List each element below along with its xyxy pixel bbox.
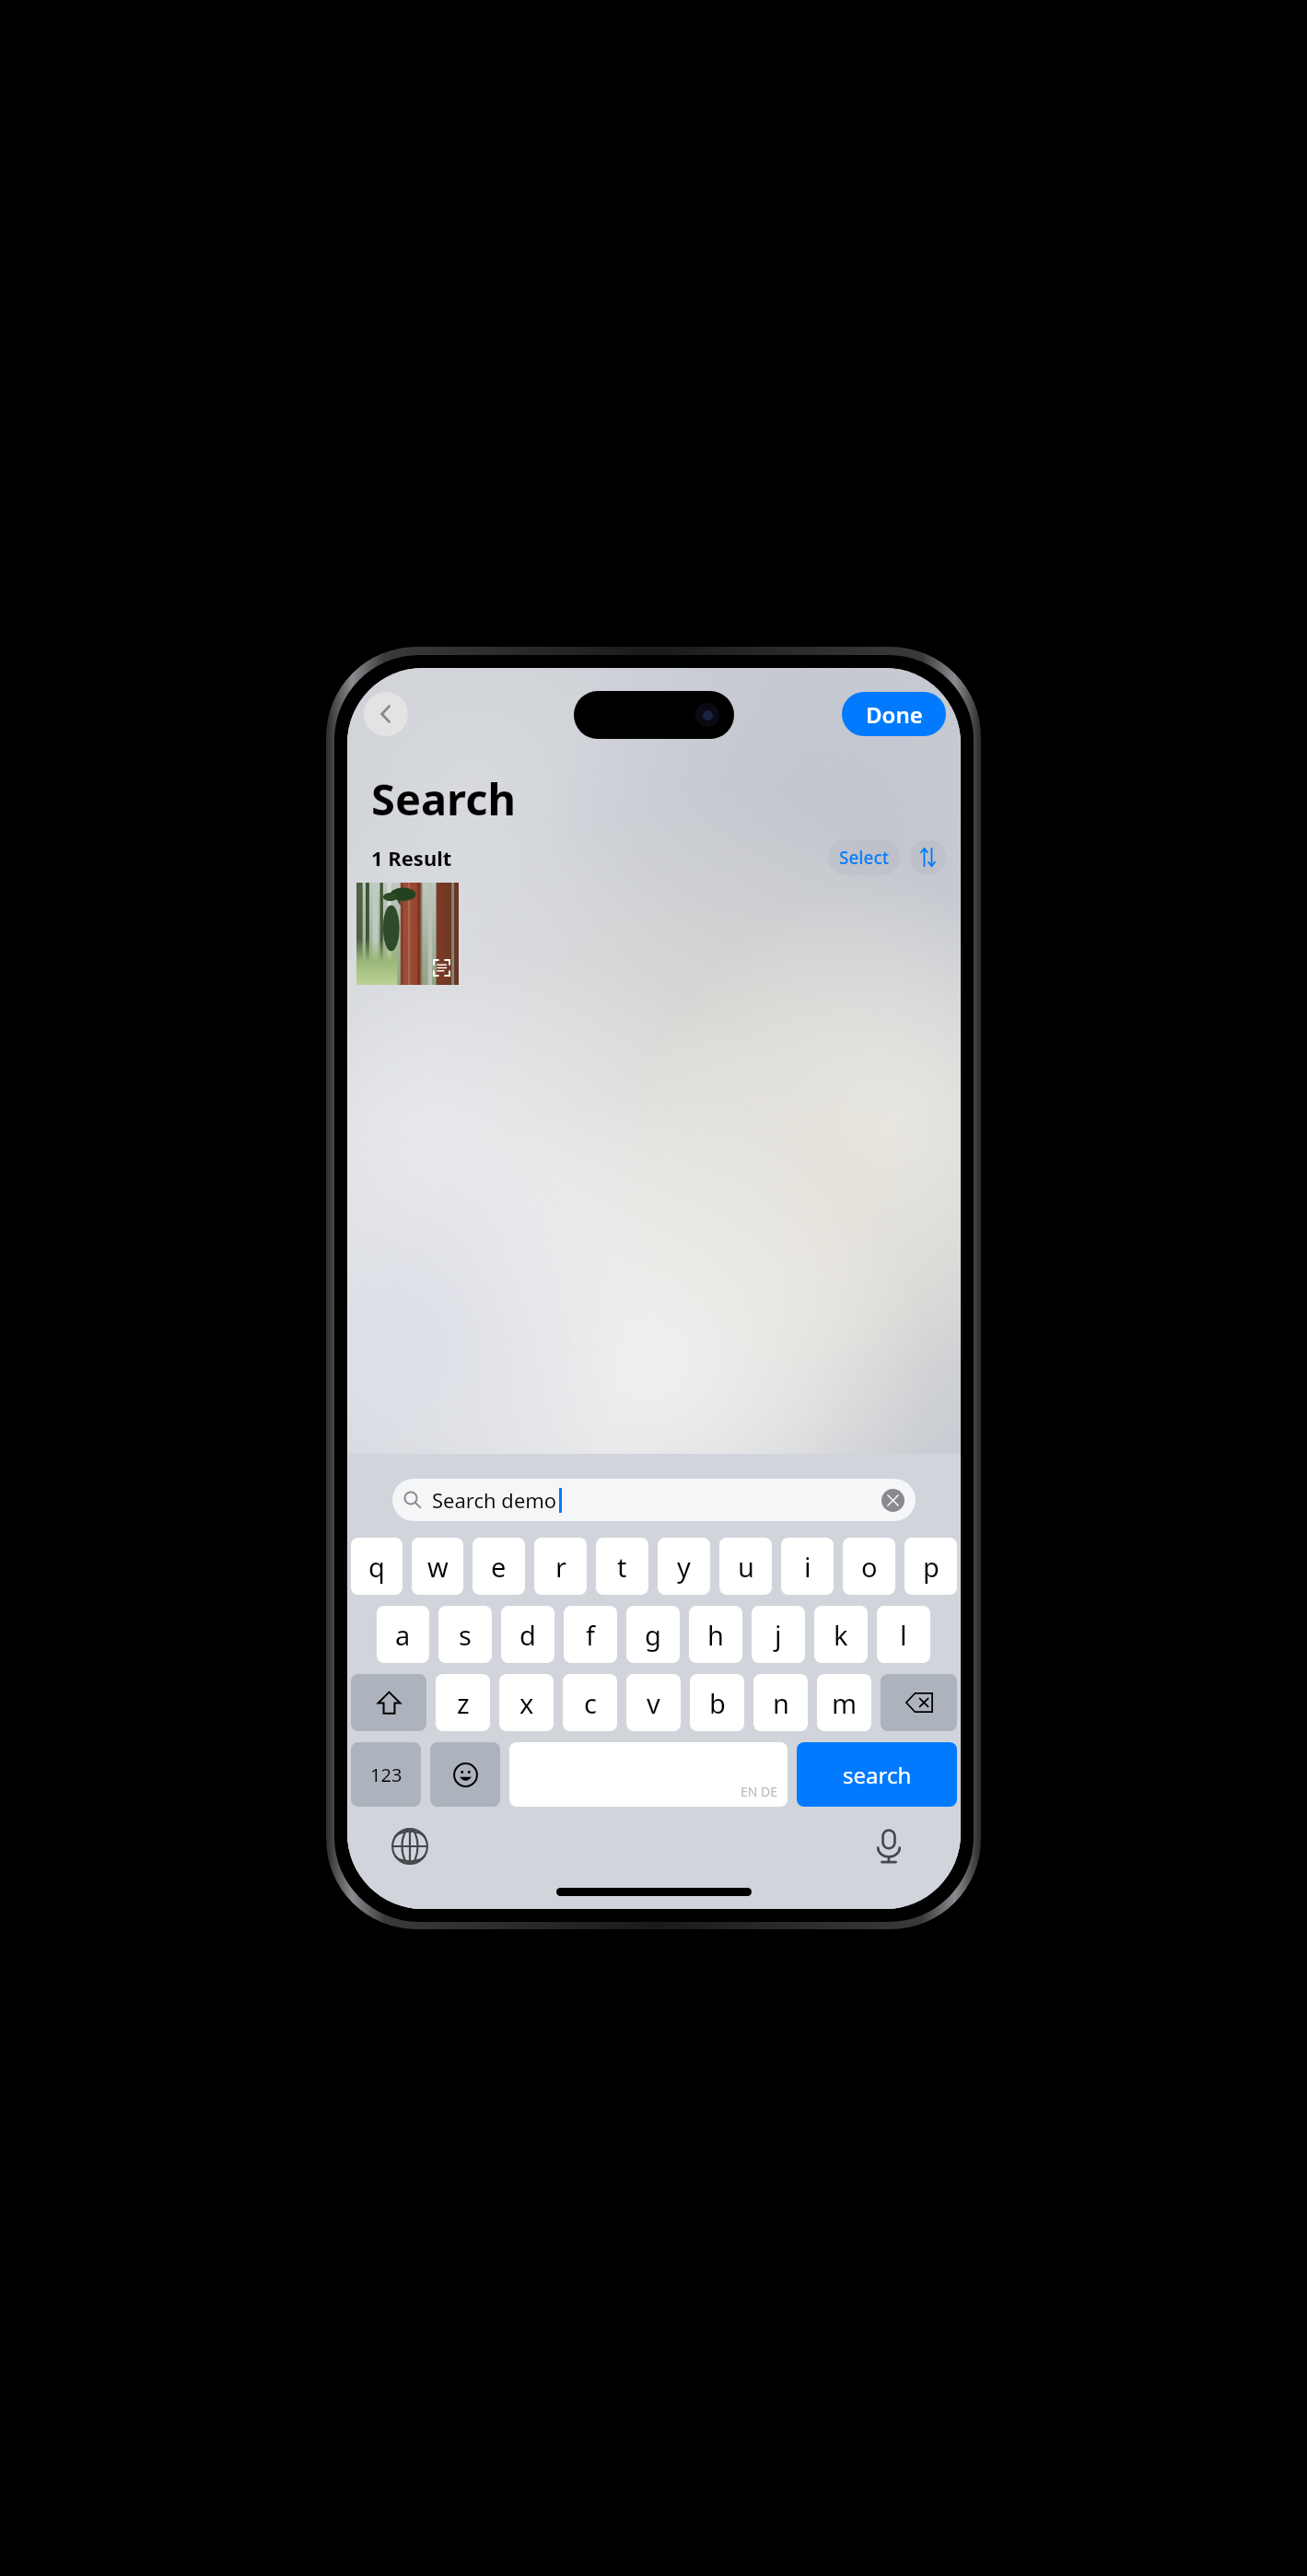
staticText: Select <box>839 846 889 870</box>
button[interactable]: q <box>351 1538 403 1595</box>
button[interactable]: Photo, redwood forest <box>356 883 459 985</box>
staticText: w <box>427 1549 449 1585</box>
button[interactable]: d <box>501 1606 554 1663</box>
button[interactable]: Back <box>364 692 408 736</box>
button[interactable]: y <box>658 1538 710 1595</box>
button[interactable]: Space <box>509 1742 788 1807</box>
staticText: d <box>519 1617 536 1653</box>
button[interactable]: f <box>564 1606 617 1663</box>
button[interactable]: b <box>690 1674 744 1731</box>
staticText: EN DE <box>741 1783 778 1800</box>
button[interactable]: x <box>499 1674 554 1731</box>
staticText: a <box>395 1617 411 1653</box>
staticText: q <box>368 1549 385 1585</box>
staticText: u <box>738 1549 754 1585</box>
staticText: z <box>457 1685 470 1721</box>
staticText: Search <box>371 769 516 828</box>
button[interactable]: c <box>563 1674 617 1731</box>
button[interactable]: o <box>843 1538 895 1595</box>
button[interactable]: g <box>626 1606 680 1663</box>
button[interactable]: s <box>438 1606 492 1663</box>
staticText: j <box>775 1617 782 1653</box>
staticText: x <box>519 1685 534 1721</box>
staticText: s <box>459 1617 472 1653</box>
staticText: 123 <box>370 1762 403 1787</box>
button[interactable]: e <box>473 1538 525 1595</box>
staticText: i <box>804 1549 811 1585</box>
button[interactable]: 123 <box>351 1742 421 1807</box>
staticText: k <box>834 1617 848 1653</box>
button[interactable]: k <box>814 1606 868 1663</box>
button[interactable]: Emoji <box>430 1742 500 1807</box>
staticText: t <box>617 1549 627 1585</box>
staticText: y <box>677 1549 691 1585</box>
button[interactable]: v <box>626 1674 681 1731</box>
button[interactable]: n <box>753 1674 808 1731</box>
staticText: p <box>923 1549 939 1585</box>
button[interactable]: p <box>904 1538 957 1595</box>
button[interactable]: Clear text <box>881 1489 904 1512</box>
button[interactable]: j <box>752 1606 805 1663</box>
staticText: l <box>900 1617 907 1653</box>
staticText: b <box>709 1685 726 1721</box>
button[interactable]: u <box>719 1538 772 1595</box>
staticText: Done <box>866 699 923 730</box>
button[interactable]: l <box>877 1606 930 1663</box>
button[interactable]: Done <box>842 692 946 736</box>
button[interactable]: r <box>534 1538 587 1595</box>
staticText: f <box>586 1617 595 1653</box>
button[interactable]: h <box>689 1606 742 1663</box>
button[interactable]: Dictate <box>865 1822 913 1870</box>
button[interactable]: Search demo <box>392 1479 916 1521</box>
button[interactable]: m <box>817 1674 871 1731</box>
button[interactable]: Shift <box>351 1674 426 1731</box>
button[interactable]: t <box>596 1538 648 1595</box>
staticText: v <box>647 1685 660 1721</box>
staticText: c <box>584 1685 597 1721</box>
button[interactable]: z <box>436 1674 490 1731</box>
button[interactable]: search <box>797 1742 957 1807</box>
button[interactable]: i <box>781 1538 834 1595</box>
button[interactable]: Select <box>828 839 900 875</box>
staticText: r <box>555 1549 566 1585</box>
staticText: h <box>707 1617 724 1653</box>
button[interactable]: w <box>412 1538 463 1595</box>
staticText: g <box>645 1617 661 1653</box>
staticText: e <box>491 1549 507 1585</box>
button[interactable]: Backspace <box>881 1674 957 1731</box>
staticText: o <box>861 1549 878 1585</box>
staticText: 1 Result <box>371 844 452 872</box>
staticText: Search demo <box>432 1486 557 1514</box>
button[interactable]: Sort <box>910 839 946 875</box>
staticText: search <box>843 1760 912 1790</box>
staticText: m <box>832 1685 858 1721</box>
button[interactable]: a <box>377 1606 429 1663</box>
staticText: n <box>773 1685 789 1721</box>
button[interactable]: Change keyboard language <box>386 1822 434 1870</box>
